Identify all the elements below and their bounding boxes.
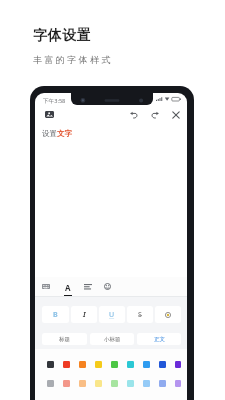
button[interactable]: Colour (79, 361, 86, 368)
button[interactable]: Redo (151, 111, 159, 119)
button[interactable]: B (42, 306, 69, 323)
button[interactable]: Colour (63, 380, 70, 387)
staticText: 下午3:58 (43, 97, 66, 105)
button[interactable]: S (127, 306, 153, 323)
button[interactable]: Emoji (104, 283, 111, 290)
button[interactable]: Colour (143, 380, 150, 387)
button[interactable]: Undo (130, 111, 138, 119)
button[interactable]: Colour (79, 380, 86, 387)
staticText: A (65, 282, 71, 293)
button[interactable]: Colour (111, 361, 118, 368)
button[interactable]: Keyboard (42, 284, 50, 289)
button[interactable]: Colour (175, 380, 181, 387)
staticText: 字体设置 (33, 27, 92, 45)
button[interactable]: Colour (47, 361, 54, 368)
button[interactable]: A (62, 277, 73, 296)
button[interactable]: Colour (63, 361, 70, 368)
button[interactable]: Paragraph (84, 284, 92, 289)
button[interactable]: Colour (111, 380, 118, 387)
button[interactable]: Colour (159, 361, 166, 368)
button[interactable]: Colour (159, 380, 166, 387)
staticText: 小标题 (104, 336, 121, 343)
staticText: 标题 (59, 336, 70, 343)
staticText: B (53, 310, 58, 320)
button[interactable]: U (99, 306, 125, 323)
staticText: I (83, 310, 86, 320)
button[interactable] (155, 306, 181, 323)
button[interactable]: 标题 (42, 333, 87, 345)
staticText: 设置 (42, 129, 57, 138)
button[interactable]: Colour (95, 361, 102, 368)
button[interactable]: Insert image (45, 111, 54, 118)
button[interactable]: 小标题 (90, 333, 134, 345)
staticText: 丰富的字体样式 (33, 54, 113, 65)
staticText: 文字 (57, 129, 72, 138)
button[interactable]: Colour (47, 380, 54, 387)
staticText: 正文 (154, 336, 165, 343)
button[interactable]: Colour (95, 380, 102, 387)
button[interactable]: I (71, 306, 97, 323)
button[interactable]: Colour (127, 380, 134, 387)
staticText: S (138, 310, 142, 320)
button[interactable]: Colour (127, 361, 134, 368)
button[interactable]: Colour (175, 361, 181, 368)
button[interactable]: Colour (143, 361, 150, 368)
button[interactable]: Close (172, 111, 180, 119)
button[interactable]: 正文 (137, 333, 181, 345)
staticText: U (109, 310, 115, 320)
